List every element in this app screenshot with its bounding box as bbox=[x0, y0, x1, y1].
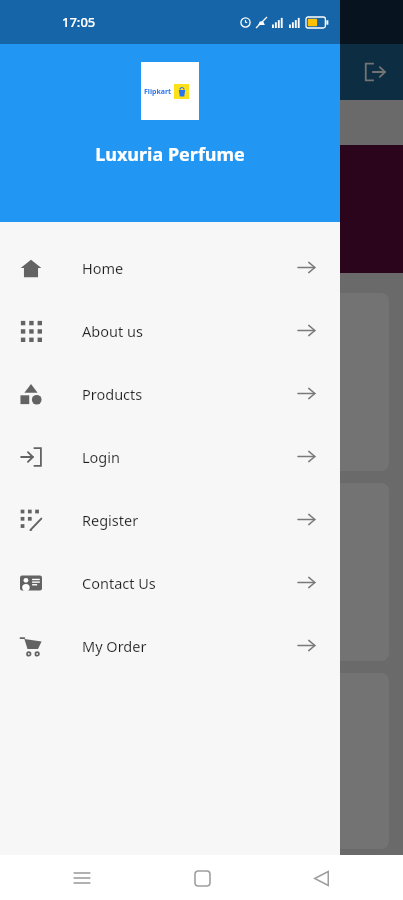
staticText: My Order bbox=[82, 636, 147, 656]
button[interactable]: Perfume 4 bbox=[14, 673, 389, 849]
button[interactable]: Home bbox=[182, 858, 222, 898]
button[interactable]: Back bbox=[301, 858, 341, 898]
staticText: 30% OFF bbox=[26, 178, 169, 224]
button[interactable]: Products bbox=[0, 362, 340, 425]
staticText: Login bbox=[82, 447, 120, 467]
button[interactable]: About us bbox=[0, 299, 340, 362]
button[interactable]: Register bbox=[0, 488, 340, 551]
button[interactable]: Home bbox=[0, 236, 340, 299]
button[interactable]: Buy bbox=[146, 575, 236, 609]
staticText: 17:05 bbox=[62, 13, 96, 31]
button[interactable]: Contact Us bbox=[0, 551, 340, 614]
staticText: Flipkart bbox=[144, 87, 172, 97]
staticText: About us bbox=[82, 321, 143, 341]
button[interactable]: Perfume 2 bbox=[14, 293, 389, 471]
button[interactable]: Login bbox=[0, 425, 340, 488]
staticText: Contact Us bbox=[82, 573, 156, 593]
staticText: Home bbox=[82, 258, 124, 278]
button[interactable]: Logout bbox=[361, 58, 389, 86]
button[interactable]: Recents bbox=[62, 858, 102, 898]
button[interactable]: Perfume 3 bbox=[14, 483, 389, 661]
staticText: Luxuria Perfume bbox=[95, 142, 245, 167]
staticText: Register bbox=[82, 510, 139, 530]
staticText: Products bbox=[82, 384, 143, 404]
button[interactable]: My Order bbox=[0, 614, 340, 677]
